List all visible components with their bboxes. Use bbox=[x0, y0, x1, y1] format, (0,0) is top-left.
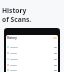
button[interactable] bbox=[6, 62, 58, 68]
button[interactable] bbox=[6, 68, 58, 72]
staticText: of Scans. bbox=[2, 15, 32, 24]
staticText: History bbox=[7, 36, 17, 40]
button[interactable]: Filter scans bbox=[53, 37, 57, 39]
staticText: History bbox=[2, 6, 27, 15]
button[interactable] bbox=[6, 50, 58, 56]
button[interactable] bbox=[6, 56, 58, 62]
button[interactable] bbox=[6, 44, 58, 50]
